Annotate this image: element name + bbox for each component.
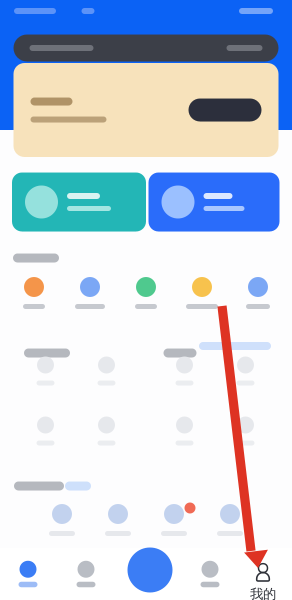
button[interactable]: Promo one: [12, 172, 146, 231]
button[interactable]: Quick entry: [17, 413, 73, 449]
button[interactable]: Quick entry: [156, 413, 212, 449]
button[interactable]: Quick entry: [78, 413, 134, 449]
button[interactable]: 首页: [2, 552, 54, 596]
button[interactable]: Quick entry: [202, 502, 258, 538]
button[interactable]: Quick entry: [78, 353, 134, 389]
button[interactable]: Quick entry: [118, 275, 174, 311]
button[interactable]: Quick entry: [17, 353, 73, 389]
button[interactable]: 分类: [60, 552, 112, 596]
button[interactable]: Quick entry: [90, 502, 146, 538]
button[interactable]: Quick entry: [217, 413, 273, 449]
button[interactable]: Add: [127, 547, 172, 592]
button[interactable]: Quick entry: [156, 353, 212, 389]
button[interactable]: Quick entry: [174, 275, 230, 311]
button[interactable]: Quick entry: [34, 502, 90, 538]
button[interactable]: Quick entry: [146, 502, 202, 538]
button[interactable]: Quick entry: [217, 353, 273, 389]
button[interactable]: 我的: [236, 563, 290, 600]
button[interactable]: 消息: [184, 552, 236, 596]
button[interactable]: Search: [13, 34, 278, 61]
button[interactable]: Quick entry: [6, 275, 62, 311]
staticText: 我的: [250, 586, 276, 600]
button[interactable]: Promo two: [148, 172, 279, 231]
button[interactable]: Member banner: [13, 63, 278, 157]
button[interactable]: Quick entry: [62, 275, 118, 311]
button[interactable]: Quick entry: [230, 275, 286, 311]
